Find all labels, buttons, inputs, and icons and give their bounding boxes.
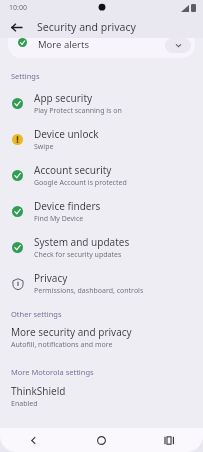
button[interactable]: Device unlock (0, 121, 203, 157)
button[interactable]: More security and privacy (0, 321, 203, 357)
staticText: Autofill, notifications and more (11, 340, 113, 350)
staticText: ThinkShield (11, 384, 66, 398)
staticText: Other settings (11, 309, 62, 319)
staticText: Account security (34, 163, 112, 177)
staticText: Permissions, dashboard, controls (34, 286, 144, 296)
staticText: Privacy (34, 271, 68, 285)
staticText: Device unlock (34, 127, 99, 141)
staticText: More Motorola settings (11, 367, 94, 377)
button[interactable]: More alerts (8, 38, 195, 58)
staticText: Play Protect scanning is on (34, 106, 122, 116)
staticText: Enabled (11, 399, 38, 409)
button[interactable]: Expand (165, 38, 191, 53)
staticText: Find My Device (34, 214, 84, 224)
button[interactable]: Home (67, 428, 135, 452)
staticText: Check for security updates (34, 250, 122, 260)
staticText: 10:00 (9, 3, 27, 13)
button[interactable]: Back (4, 16, 28, 38)
button[interactable]: Recent apps (135, 428, 203, 452)
staticText: System and updates (34, 235, 130, 249)
button[interactable]: Device finders (0, 193, 203, 229)
staticText: App security (34, 91, 93, 105)
staticText: Settings (11, 71, 40, 81)
staticText: Security and privacy (37, 20, 136, 34)
button[interactable]: Account security (0, 157, 203, 193)
staticText: Device finders (34, 199, 101, 213)
button[interactable]: System and updates (0, 229, 203, 265)
button[interactable]: Back (0, 428, 67, 452)
staticText: Swipe (34, 142, 54, 152)
staticText: Google Account is protected (34, 178, 127, 188)
button[interactable]: ThinkShield (0, 380, 203, 416)
staticText: More security and privacy (11, 325, 132, 339)
staticText: More alerts (38, 38, 89, 51)
button[interactable]: Privacy (0, 265, 203, 301)
button[interactable]: App security (0, 85, 203, 121)
